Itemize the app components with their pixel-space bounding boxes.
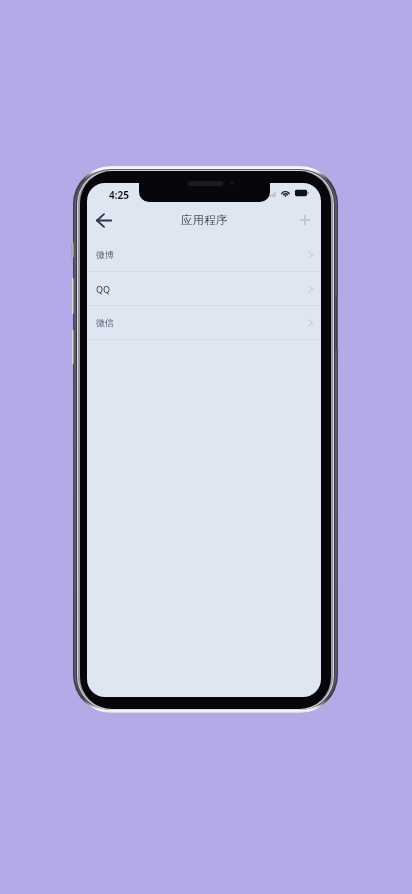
button[interactable]: QQ [87, 272, 321, 305]
button[interactable]: Add [291, 206, 319, 234]
staticText: QQ [96, 283, 111, 295]
staticText: 4:25 [109, 188, 129, 202]
button[interactable]: 微博 [87, 238, 321, 271]
staticText: 微博 [96, 249, 114, 260]
button[interactable]: 微信 [87, 306, 321, 339]
staticText: 微信 [96, 317, 114, 328]
button[interactable]: Back [90, 206, 118, 234]
staticText: 应用程序 [181, 213, 227, 227]
